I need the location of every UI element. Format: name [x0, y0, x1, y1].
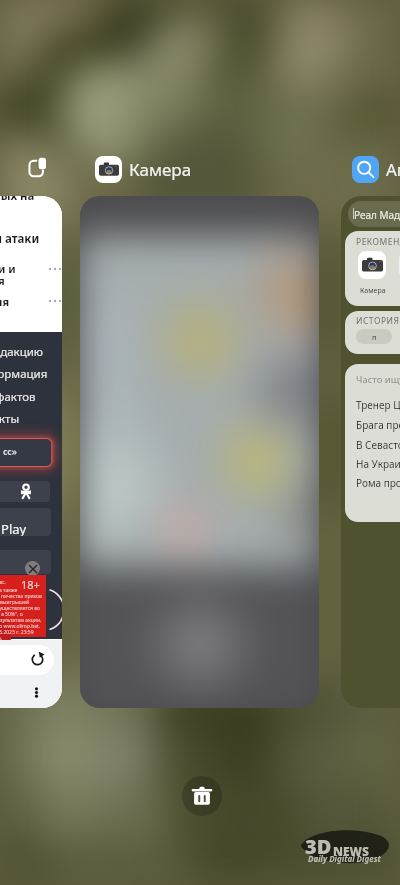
staticText: Тренер ЦСКА прокомментиро: [356, 398, 400, 412]
staticText: Реал Мадрид Барселона: [354, 208, 400, 222]
staticText: я: [0, 273, 5, 288]
button[interactable]: Close ad: [25, 561, 40, 576]
staticText: на.: [0, 635, 3, 642]
staticText: личества призов: [1, 593, 42, 600]
staticText: Daily Digital Digest: [308, 853, 381, 864]
staticText: а 50%", о: [1, 611, 23, 618]
staticText: 3D: [305, 833, 332, 860]
staticText: ия: [0, 294, 10, 309]
button[interactable]: Апп: [352, 156, 400, 183]
button[interactable]: Split screen: [28, 157, 49, 178]
staticText: gle Play: [0, 520, 27, 536]
button[interactable]: Реал Мадрид Барселона: [348, 201, 400, 227]
staticText: п: [372, 332, 377, 342]
staticText: Рома против Бетиса: [356, 476, 400, 490]
staticText: На Украине заявили: [356, 457, 400, 471]
staticText: рвс.: [0, 579, 6, 585]
button[interactable]: Камера: [95, 156, 192, 183]
staticText: 18+: [21, 577, 40, 592]
button[interactable]: мых на: [0, 196, 62, 708]
staticText: Камера: [129, 158, 192, 181]
staticText: Часто ищут: [356, 373, 400, 386]
staticText: то www.olimp.bet.: [0, 623, 41, 630]
staticText: кты: [0, 411, 20, 427]
staticText: мых на: [0, 196, 35, 204]
staticText: Апп: [386, 158, 400, 181]
staticText: я атаки: [0, 231, 40, 247]
staticText: Брага против Наполи: [356, 418, 400, 432]
staticText: нформация: [0, 366, 48, 382]
staticText: зультатам акции,: [0, 617, 42, 624]
staticText: и и: [0, 261, 16, 276]
staticText: ИСТОРИЯ ПОИСКА: [356, 315, 400, 327]
staticText: фактов: [0, 389, 36, 405]
staticText: а также: [0, 587, 18, 594]
staticText: существляется во: [0, 605, 41, 612]
button[interactable]: Реал Мадрид Барселона: [341, 196, 400, 708]
button[interactable]: [80, 196, 319, 708]
staticText: В Севастополе объявили: [356, 438, 400, 452]
staticText: РЕКОМЕНДУЕМ: [356, 236, 400, 248]
staticText: NEWS: [333, 843, 369, 859]
staticText: редакцию: [0, 344, 44, 360]
staticText: Камера: [360, 286, 386, 296]
staticText: .06.2023 г. 23:59: [0, 629, 34, 636]
button[interactable]: Clear all recent apps: [182, 776, 222, 816]
staticText: сс»: [3, 446, 18, 458]
staticText: выигрышей: [0, 599, 30, 606]
